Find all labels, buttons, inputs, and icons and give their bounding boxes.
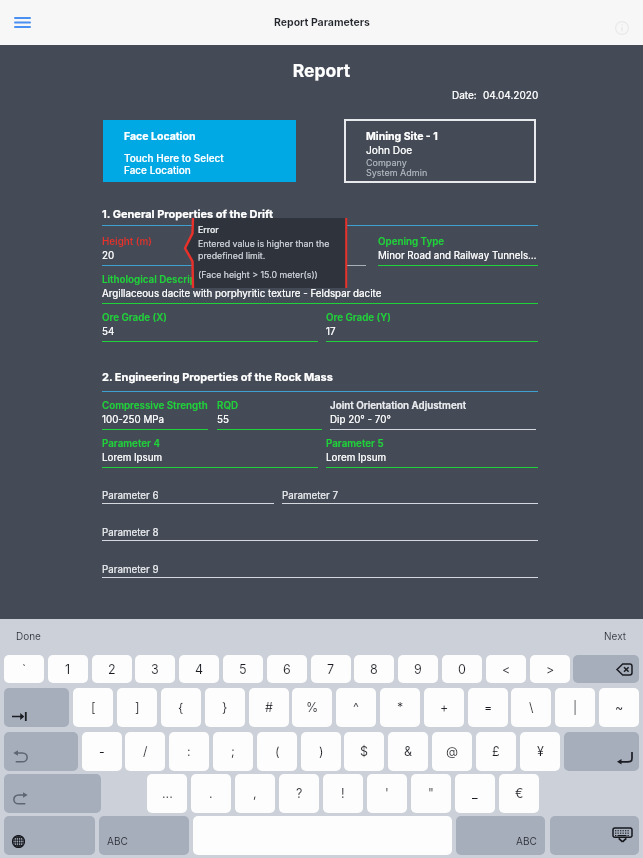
button[interactable]: "	[411, 774, 451, 813]
button[interactable]: Height (m)	[102, 237, 208, 267]
button[interactable]: Parameter 5	[326, 439, 538, 469]
staticText: 04.04.2020	[483, 89, 539, 101]
button[interactable]: :	[169, 732, 209, 771]
staticText: Parameter 7	[282, 490, 339, 502]
staticText: ^	[353, 700, 359, 715]
button[interactable]: .	[191, 774, 231, 813]
button[interactable]: Parameter 6	[102, 491, 274, 507]
button[interactable]: 2	[92, 655, 132, 683]
button[interactable]: Redo	[4, 774, 101, 813]
button[interactable]: (	[257, 732, 297, 771]
staticText: \	[529, 700, 534, 715]
staticText: Lorem Ipsum	[326, 452, 538, 464]
button[interactable]: %	[292, 688, 332, 727]
button[interactable]: \	[511, 688, 551, 727]
button[interactable]: Done	[16, 630, 41, 642]
staticText: Report	[0, 60, 643, 81]
button[interactable]: Ore Grade (Y)	[326, 313, 538, 343]
button[interactable]: Undo	[4, 732, 78, 771]
button[interactable]: ...	[147, 774, 187, 813]
staticText: %	[306, 700, 319, 715]
staticText: ;	[231, 744, 235, 759]
staticText: `	[22, 662, 27, 677]
button[interactable]: Lithological Description	[102, 275, 538, 305]
staticText: 1. General Properties of the Drift	[102, 207, 274, 220]
staticText: (	[275, 744, 280, 759]
button[interactable]: Return	[564, 732, 639, 771]
button[interactable]: >	[530, 655, 570, 683]
button[interactable]: Parameter 9	[102, 565, 538, 581]
button[interactable]: 6	[267, 655, 307, 683]
button[interactable]: +	[424, 688, 464, 727]
button[interactable]: Ore Grade (X)	[102, 313, 318, 343]
button[interactable]: 3	[135, 655, 175, 683]
button[interactable]: 9	[398, 655, 438, 683]
staticText: ,	[253, 786, 257, 801]
button[interactable]: Hide keyboard	[550, 816, 639, 855]
button[interactable]: )	[301, 732, 341, 771]
staticText: £	[492, 744, 500, 759]
button[interactable]: Backspace	[573, 655, 639, 683]
button[interactable]: 7	[311, 655, 351, 683]
button[interactable]: ABC	[99, 816, 189, 855]
button[interactable]: _	[455, 774, 495, 813]
staticText: |	[573, 700, 578, 715]
staticText: Company	[366, 157, 407, 168]
button[interactable]: $	[344, 732, 384, 771]
staticText: =	[484, 700, 493, 715]
button[interactable]: Compressive Strength	[102, 401, 208, 431]
button[interactable]: Parameter 8	[102, 528, 538, 544]
button[interactable]: =	[468, 688, 508, 727]
button[interactable]: !	[323, 774, 363, 813]
button[interactable]: Joint Orientation Adjustment	[330, 401, 536, 431]
button[interactable]: Opening Type	[378, 237, 538, 267]
button[interactable]: 1	[48, 655, 88, 683]
button[interactable]: }	[205, 688, 245, 727]
button[interactable]: Mining Site - 1	[344, 119, 536, 183]
button[interactable]: RQD	[217, 401, 322, 431]
button[interactable]: ^	[336, 688, 376, 727]
staticText: #	[265, 700, 273, 715]
button[interactable]: Menu	[2, 0, 40, 45]
button[interactable]: {	[161, 688, 201, 727]
button[interactable]: 4	[179, 655, 219, 683]
button[interactable]: Parameter 4	[102, 439, 318, 469]
button[interactable]: |	[555, 688, 595, 727]
button[interactable]: *	[380, 688, 420, 727]
button[interactable]: €	[499, 774, 539, 813]
button[interactable]: ;	[213, 732, 253, 771]
button[interactable]: &	[388, 732, 428, 771]
button[interactable]: ,	[235, 774, 275, 813]
button[interactable]: 5	[223, 655, 263, 683]
button[interactable]: /	[125, 732, 165, 771]
button[interactable]: ABC	[456, 816, 545, 855]
button[interactable]: Language	[4, 816, 95, 855]
staticText: Parameter 9	[102, 564, 159, 576]
staticText: Report Parameters	[274, 16, 370, 29]
staticText: 17	[326, 326, 538, 338]
button[interactable]: `	[4, 655, 44, 683]
button[interactable]: ¥	[520, 732, 560, 771]
button[interactable]: ~	[599, 688, 639, 727]
button[interactable]: -	[82, 732, 122, 771]
button[interactable]: 0	[442, 655, 482, 683]
button[interactable]: 8	[354, 655, 394, 683]
staticText: .	[209, 786, 213, 801]
button[interactable]: Face Location	[103, 120, 296, 182]
button[interactable]: <	[486, 655, 526, 683]
button[interactable]: ?	[279, 774, 319, 813]
staticText: Argillaceous dacite with porphyritic tex…	[102, 288, 538, 300]
button[interactable]: #	[249, 688, 289, 727]
button[interactable]: ]	[117, 688, 157, 727]
button[interactable]: '	[367, 774, 407, 813]
staticText: 20	[102, 250, 208, 262]
button[interactable]: [	[73, 688, 113, 727]
button[interactable]: Next	[604, 630, 627, 642]
staticText: "	[428, 786, 434, 801]
button[interactable]: Tab	[4, 688, 69, 727]
button[interactable]: £	[476, 732, 516, 771]
button[interactable]: Parameter 7	[282, 491, 538, 507]
button[interactable]: @	[432, 732, 472, 771]
